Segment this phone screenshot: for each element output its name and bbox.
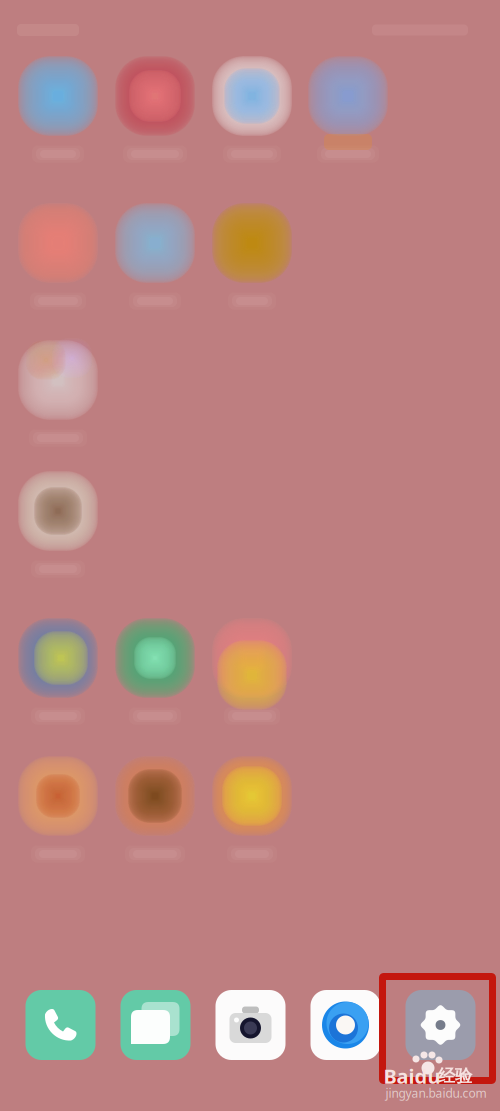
- button[interactable]: App: [405, 990, 475, 1060]
- staticText: 经验: [438, 1065, 472, 1087]
- staticText: jingyan.baidu.com: [385, 1085, 486, 1101]
- button[interactable]: App: [310, 990, 380, 1060]
- button[interactable]: App: [25, 990, 95, 1060]
- button[interactable]: App: [120, 990, 190, 1060]
- button[interactable]: App: [215, 990, 285, 1060]
- staticText: Baidu: [383, 1063, 440, 1089]
